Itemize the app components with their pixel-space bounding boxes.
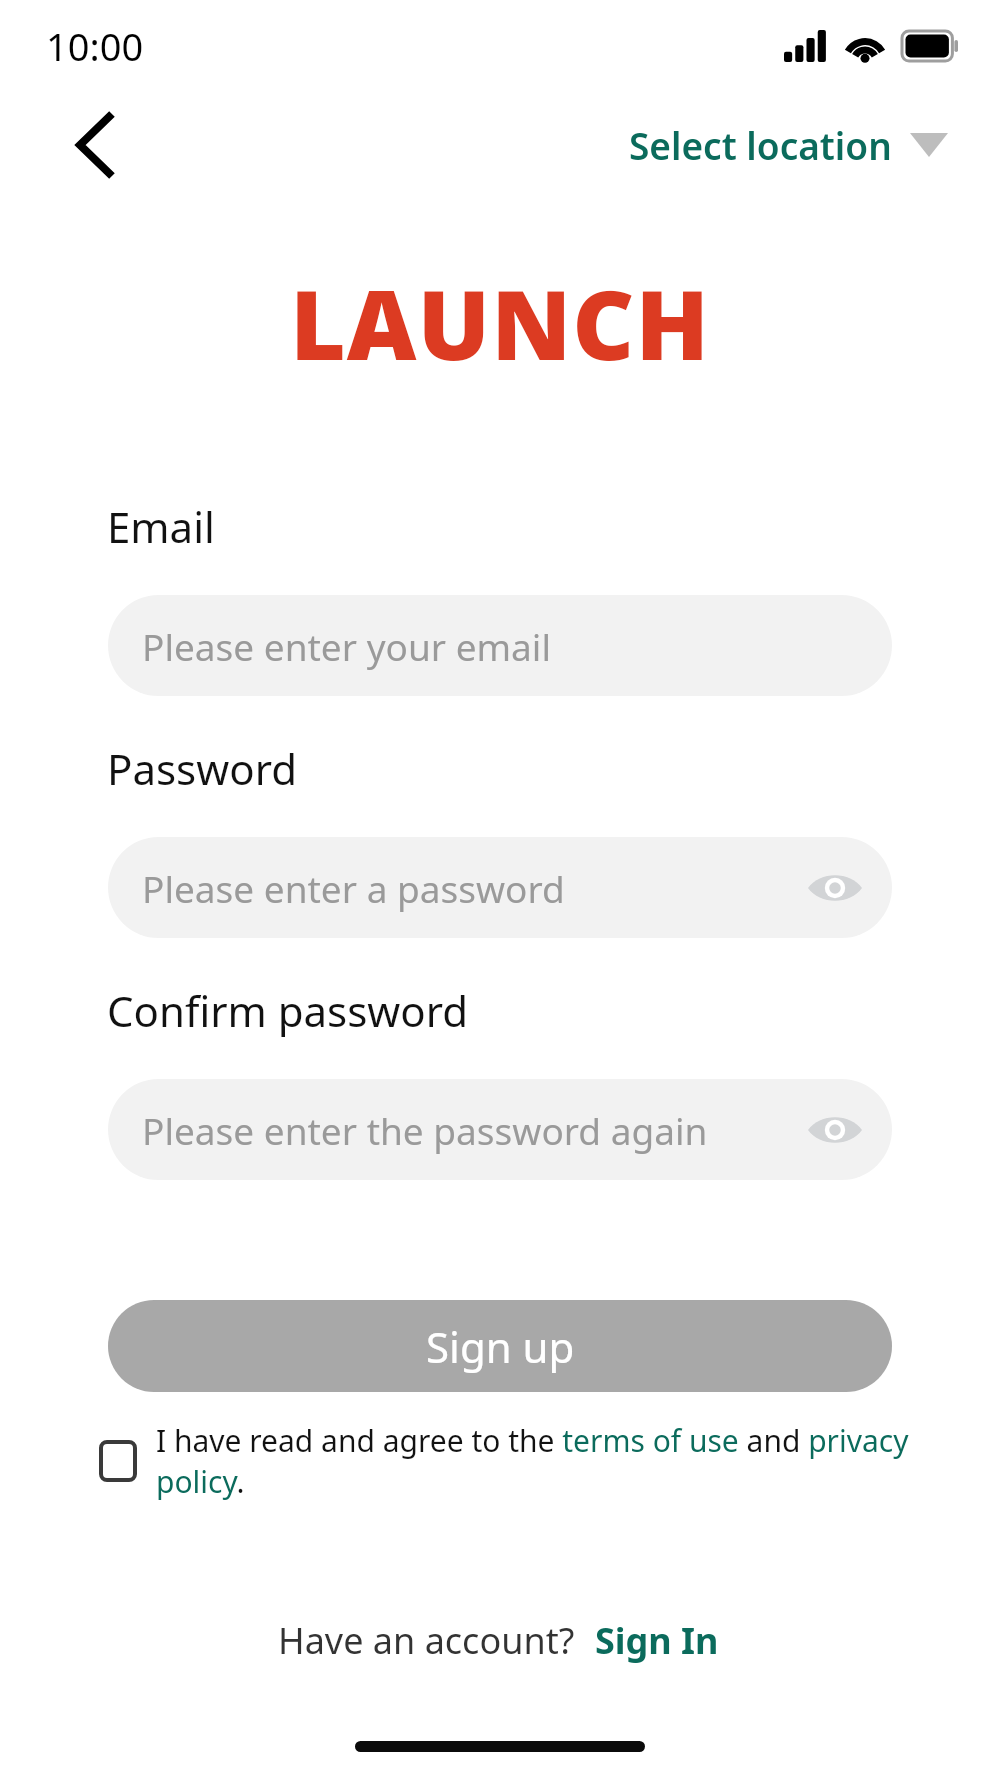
button[interactable]: Please enter your email [108, 595, 892, 696]
button[interactable]: Show password [804, 1099, 866, 1161]
staticText: I have read and agree to the terms of us… [156, 1420, 960, 1502]
button[interactable]: Sign In [591, 1610, 723, 1671]
staticText: 10:00 [46, 20, 144, 72]
staticText: Password [107, 740, 297, 797]
staticText: LAUNCH [290, 257, 711, 388]
staticText: Sign up [426, 1318, 575, 1375]
button[interactable]: Back [60, 109, 132, 181]
staticText: Please enter a password [142, 863, 565, 913]
button[interactable]: Select location [621, 110, 956, 180]
staticText: Email [107, 498, 215, 555]
button[interactable]: Show password [804, 857, 866, 919]
staticText: Select location [629, 120, 892, 170]
staticText: Sign In [595, 1616, 719, 1665]
staticText: Please enter your email [142, 621, 551, 671]
button[interactable]: Agree to terms checkbox [96, 1439, 140, 1483]
staticText: Confirm password [107, 982, 469, 1039]
button[interactable]: Sign up [108, 1300, 892, 1392]
button[interactable]: Please enter the password again [108, 1079, 892, 1180]
staticText: Have an account? [278, 1616, 575, 1665]
button[interactable]: Please enter a password [108, 837, 892, 938]
staticText: Please enter the password again [142, 1105, 708, 1155]
